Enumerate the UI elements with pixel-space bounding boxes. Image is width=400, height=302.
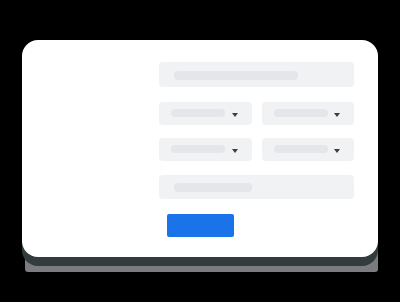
button[interactable]: Country (159, 138, 252, 161)
button[interactable]: Phone number (159, 175, 354, 199)
button[interactable]: City (159, 102, 252, 125)
button[interactable]: Submit (167, 214, 234, 237)
button[interactable]: State (262, 102, 354, 125)
button[interactable]: Street address (159, 62, 354, 87)
button[interactable]: Postal code (262, 138, 354, 161)
